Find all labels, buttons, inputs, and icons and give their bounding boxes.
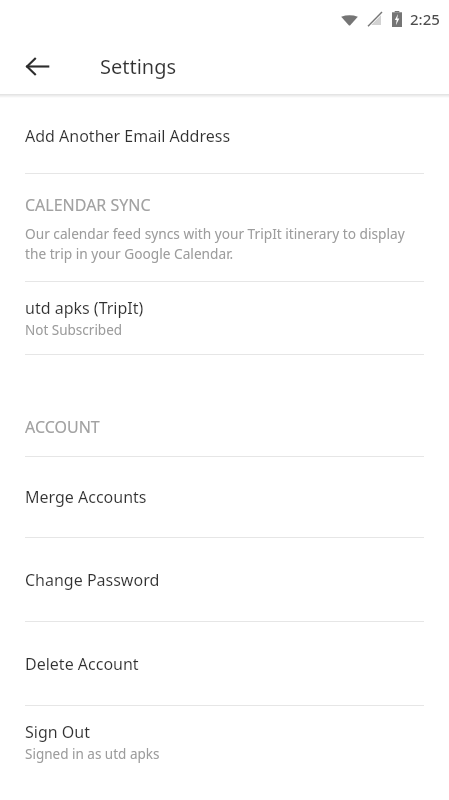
button[interactable]: Merge Accounts (0, 457, 449, 537)
staticText: utd apks (TripIt) (25, 297, 144, 319)
staticText: Settings (100, 53, 177, 80)
staticText: Not Subscribed (25, 321, 123, 339)
staticText: Delete Account (25, 653, 139, 675)
button[interactable]: Back (13, 42, 61, 90)
staticText: Change Password (25, 569, 160, 591)
staticText: Merge Accounts (25, 486, 147, 508)
staticText: Signed in as utd apks (25, 745, 160, 763)
button[interactable]: Change Password (0, 538, 449, 621)
button[interactable]: Add Another Email Address (0, 98, 449, 173)
staticText: 2:25 (410, 9, 440, 29)
staticText: Sign Out (25, 721, 90, 743)
button[interactable]: Delete Account (0, 622, 449, 705)
staticText: Add Another Email Address (25, 125, 231, 147)
button[interactable]: Sign Out (0, 706, 449, 778)
button[interactable]: utd apks (TripIt) (0, 282, 449, 354)
staticText: ACCOUNT (25, 416, 100, 438)
staticText: CALENDAR SYNC (25, 194, 151, 216)
staticText: Our calendar feed syncs with your TripIt… (25, 224, 427, 263)
